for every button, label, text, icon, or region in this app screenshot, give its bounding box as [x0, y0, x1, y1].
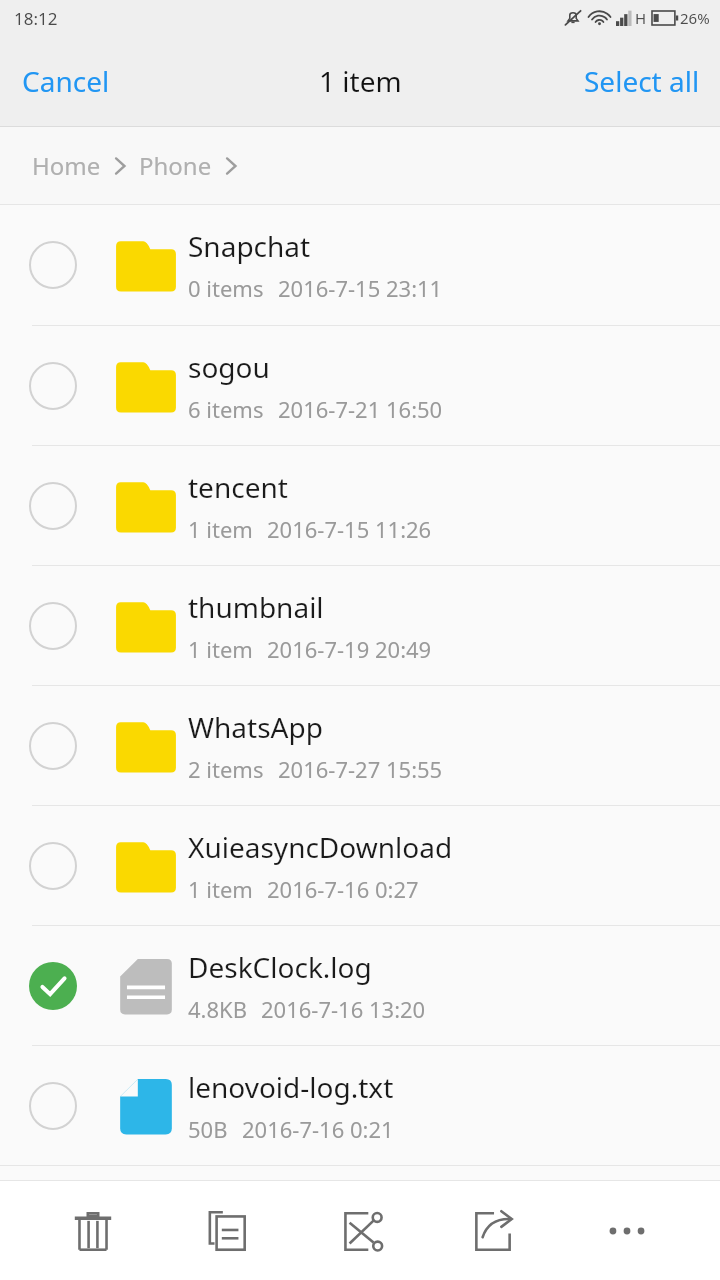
button[interactable]: More options — [579, 1186, 675, 1276]
staticText: DeskClock.log — [188, 948, 372, 986]
staticText: 2016-7-21 16:50 — [278, 394, 443, 424]
staticText: 0 items — [188, 273, 264, 303]
staticText: 2016-7-15 11:26 — [267, 514, 432, 544]
button[interactable]: lenovoid-log.txt — [0, 1046, 720, 1165]
staticText: Select all — [584, 62, 700, 100]
button[interactable]: DeskClock.log — [0, 926, 720, 1045]
staticText: sogou — [188, 348, 270, 386]
staticText: Phone — [139, 149, 212, 182]
button[interactable]: sogou — [0, 326, 720, 445]
staticText: thumbnail — [188, 588, 324, 626]
staticText: 6 items — [188, 394, 264, 424]
staticText: XuieasyncDownload — [188, 828, 453, 866]
staticText: 26% — [680, 8, 710, 28]
button[interactable]: Share — [445, 1186, 541, 1276]
staticText: 2016-7-27 15:55 — [278, 754, 443, 784]
staticText: 4.8KB — [188, 994, 247, 1024]
button[interactable]: Snapchat — [0, 205, 720, 325]
staticText: 2 items — [188, 754, 264, 784]
staticText: H — [635, 8, 647, 28]
button[interactable]: Copy — [179, 1186, 275, 1276]
staticText: 2016-7-16 13:20 — [261, 994, 426, 1024]
button[interactable]: Cut — [312, 1186, 408, 1276]
staticText: 1 item — [188, 874, 253, 904]
button[interactable]: Delete — [45, 1186, 141, 1276]
button[interactable]: thumbnail — [0, 566, 720, 685]
staticText: Cancel — [22, 62, 110, 100]
button[interactable]: WhatsApp — [0, 686, 720, 805]
staticText: 50B — [188, 1114, 228, 1144]
button[interactable]: Phone — [139, 149, 212, 182]
button[interactable]: Select all — [564, 36, 720, 126]
staticText: 1 item — [319, 62, 402, 100]
button[interactable]: Cancel — [0, 36, 132, 126]
staticText: WhatsApp — [188, 708, 323, 746]
staticText: 2016-7-19 20:49 — [267, 634, 432, 664]
staticText: 18:12 — [14, 7, 58, 30]
button[interactable]: tencent — [0, 446, 720, 565]
staticText: 2016-7-16 0:27 — [267, 874, 419, 904]
button[interactable]: XuieasyncDownload — [0, 806, 720, 925]
staticText: lenovoid-log.txt — [188, 1068, 394, 1106]
staticText: 2016-7-15 23:11 — [278, 273, 443, 303]
button[interactable]: Home — [32, 149, 101, 182]
staticText: Snapchat — [188, 227, 311, 265]
staticText: 1 item — [188, 634, 253, 664]
staticText: 1 item — [188, 514, 253, 544]
staticText: tencent — [188, 468, 288, 506]
staticText: 2016-7-16 0:21 — [242, 1114, 394, 1144]
staticText: Home — [32, 149, 101, 182]
